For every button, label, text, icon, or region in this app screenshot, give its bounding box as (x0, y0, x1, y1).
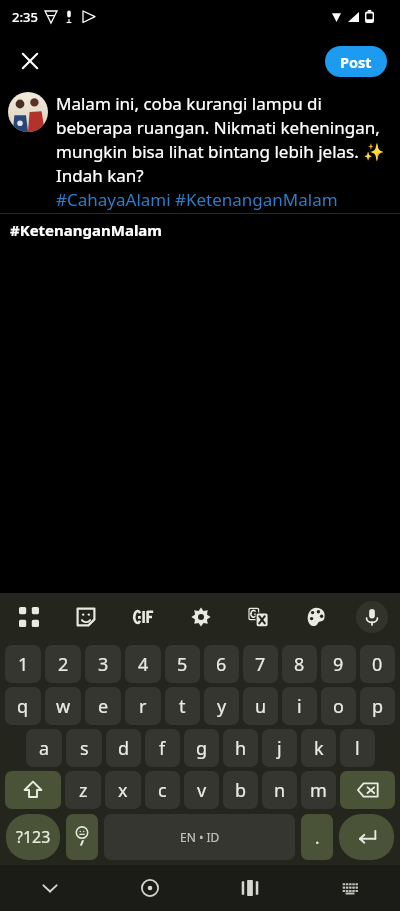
staticText: 2 (58, 652, 69, 677)
staticText: z (79, 778, 88, 803)
button[interactable]: Backspace (340, 771, 395, 809)
button[interactable]: h (223, 729, 258, 767)
staticText: e (98, 694, 109, 719)
staticText: a (39, 736, 50, 761)
staticText: r (139, 694, 147, 719)
staticText: i (297, 694, 302, 719)
staticText: 4 (138, 652, 149, 677)
button[interactable]: Emoji (66, 814, 98, 860)
staticText: 3 (98, 652, 109, 677)
button[interactable]: b (223, 771, 258, 809)
button[interactable]: z (65, 771, 101, 809)
staticText: g (196, 736, 208, 761)
button[interactable]: . (301, 814, 333, 860)
button[interactable]: Themes (299, 600, 333, 634)
staticText: 7 (255, 652, 266, 677)
button[interactable]: Close (8, 39, 52, 83)
staticText: ?123 (16, 826, 51, 848)
staticText: b (235, 778, 247, 803)
button[interactable]: m (301, 771, 336, 809)
staticText: x (118, 778, 128, 803)
staticText: v (197, 778, 207, 803)
staticText: n (274, 778, 286, 803)
button[interactable]: 6 (204, 645, 239, 683)
staticText: y (217, 694, 227, 719)
button[interactable]: 5 (165, 645, 200, 683)
button[interactable]: 1 (5, 645, 41, 683)
button[interactable]: n (262, 771, 297, 809)
staticText: w (56, 694, 71, 719)
staticText: k (314, 736, 324, 761)
staticText: . (315, 826, 320, 849)
staticText: Malam ini, coba kurangi lampu di beberap… (56, 92, 392, 211)
button[interactable]: Translate (241, 600, 275, 634)
button[interactable]: ?123 (6, 814, 60, 860)
button[interactable]: 7 (243, 645, 278, 683)
button[interactable]: g (184, 729, 219, 767)
button[interactable]: p (360, 687, 395, 725)
button[interactable]: f (145, 729, 180, 767)
staticText: h (235, 736, 247, 761)
staticText: c (158, 778, 167, 803)
button[interactable]: o (321, 687, 356, 725)
button[interactable]: Home (100, 865, 200, 911)
staticText: #KetenanganMalam (10, 220, 162, 240)
button[interactable]: 4 (125, 645, 161, 683)
staticText: 5 (177, 652, 188, 677)
button[interactable]: Settings (184, 600, 218, 634)
button[interactable]: 9 (321, 645, 356, 683)
button[interactable]: u (243, 687, 278, 725)
staticText: m (310, 778, 327, 803)
button[interactable]: d (106, 729, 141, 767)
button[interactable]: s (66, 729, 102, 767)
staticText: j (277, 736, 282, 761)
button[interactable]: x (105, 771, 141, 809)
staticText: t (179, 694, 186, 719)
button[interactable]: Shift (5, 771, 61, 809)
staticText: f (159, 736, 166, 761)
button[interactable]: Voice input (356, 601, 388, 633)
staticText: o (333, 694, 344, 719)
staticText: 9 (333, 652, 344, 677)
button[interactable]: c (145, 771, 180, 809)
staticText: u (255, 694, 267, 719)
button[interactable]: Apps (12, 600, 46, 634)
staticText: s (80, 736, 89, 761)
button[interactable]: e (85, 687, 121, 725)
button[interactable]: i (282, 687, 317, 725)
staticText: 2:35 (12, 8, 38, 26)
button[interactable]: t (165, 687, 200, 725)
staticText: Post (340, 52, 372, 72)
button[interactable]: EN • ID (104, 814, 295, 860)
button[interactable]: w (45, 687, 81, 725)
button[interactable]: Post (325, 46, 387, 77)
staticText: 1 (18, 652, 29, 677)
staticText: 8 (294, 652, 305, 677)
button[interactable]: 8 (282, 645, 317, 683)
staticText: l (355, 736, 360, 761)
button[interactable]: 0 (360, 645, 395, 683)
button[interactable]: y (204, 687, 239, 725)
button[interactable]: Switch keyboard (300, 865, 400, 911)
staticText: p (372, 694, 384, 719)
button[interactable]: Enter (339, 814, 394, 860)
button[interactable]: Stickers (69, 600, 103, 634)
button[interactable]: r (125, 687, 161, 725)
button[interactable]: v (184, 771, 219, 809)
staticText: EN • ID (180, 829, 220, 845)
button[interactable]: j (262, 729, 297, 767)
button[interactable]: k (301, 729, 336, 767)
staticText: q (17, 694, 29, 719)
button[interactable]: 2 (45, 645, 81, 683)
button[interactable]: Hide keyboard (0, 865, 100, 911)
button[interactable]: GIF (127, 600, 161, 634)
staticText: 0 (372, 652, 383, 677)
button[interactable]: 3 (85, 645, 121, 683)
staticText: d (118, 736, 130, 761)
button[interactable]: #KetenanganMalam (0, 214, 400, 246)
staticText: 6 (216, 652, 227, 677)
button[interactable]: Recents (200, 865, 300, 911)
button[interactable]: q (5, 687, 41, 725)
button[interactable]: l (340, 729, 375, 767)
button[interactable]: a (26, 729, 62, 767)
